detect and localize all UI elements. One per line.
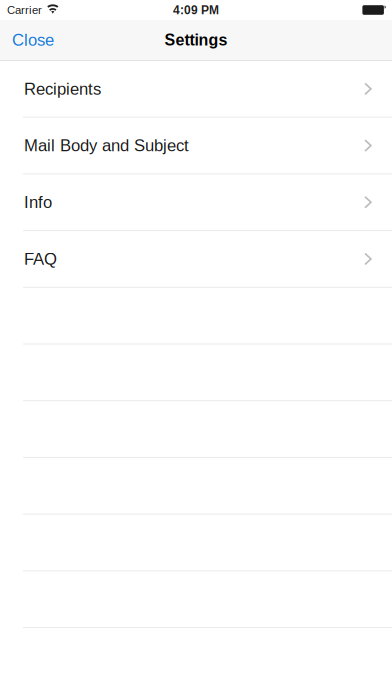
button[interactable]: Mail Body and Subject [0,118,392,174]
staticText: FAQ [24,250,57,268]
staticText: Mail Body and Subject [24,136,189,155]
button[interactable]: Recipients [0,61,392,118]
button[interactable]: FAQ [0,231,392,288]
staticText: Recipients [24,79,101,98]
staticText: Settings [164,31,227,49]
button[interactable]: Close [0,20,66,60]
staticText: 4:09 PM [173,3,219,17]
button[interactable]: Info [0,174,392,231]
staticText: Info [24,193,52,211]
staticText: Carrier [7,4,42,16]
staticText: Close [12,31,54,49]
